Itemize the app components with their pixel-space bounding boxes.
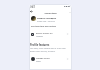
staticText: Updated — [36, 35, 43, 37]
button[interactable]: Tiffany Campbell — [30, 16, 70, 23]
button[interactable]: Back — [29, 9, 34, 14]
button[interactable]: Recent activity set — [30, 32, 70, 37]
staticText: Tiffany Campbell — [37, 17, 57, 20]
staticText: 9:41 — [30, 5, 35, 8]
staticText: Profile type · Personal — [37, 20, 55, 22]
staticText: See this item and details — [31, 25, 56, 28]
button[interactable]: More options — [67, 9, 72, 14]
staticText: Profile features — [30, 43, 50, 46]
staticText: Public — [36, 60, 41, 62]
staticText: Recent activity set — [36, 32, 53, 35]
staticText: Collection — [29, 11, 72, 14]
button[interactable]: Manage access — [30, 57, 70, 62]
staticText: Manage access — [36, 57, 50, 60]
staticText: The safer, more flexible way to share yo… — [30, 47, 66, 53]
